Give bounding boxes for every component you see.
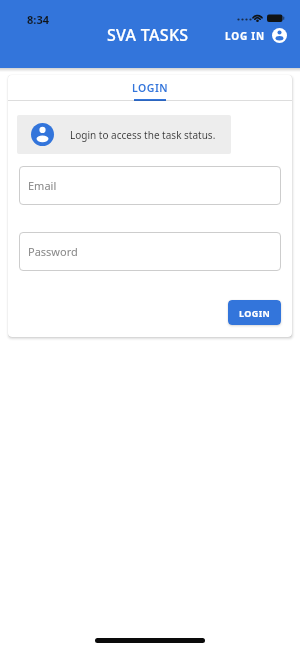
- button[interactable]: LOGIN: [8, 75, 292, 101]
- staticText: Login to access the task status.: [70, 128, 216, 142]
- button[interactable]: Password: [19, 232, 281, 271]
- staticText: LOGIN: [239, 307, 271, 319]
- staticText: LOG IN: [225, 29, 265, 43]
- staticText: Password: [28, 244, 78, 259]
- staticText: Email: [28, 178, 57, 193]
- button[interactable]: LOGIN: [228, 300, 281, 325]
- staticText: 8:34: [27, 12, 49, 27]
- staticText: SVA TASKS: [107, 24, 189, 46]
- staticText: LOGIN: [132, 81, 169, 95]
- button[interactable]: LOG IN: [225, 28, 292, 43]
- button[interactable]: Email: [19, 166, 281, 205]
